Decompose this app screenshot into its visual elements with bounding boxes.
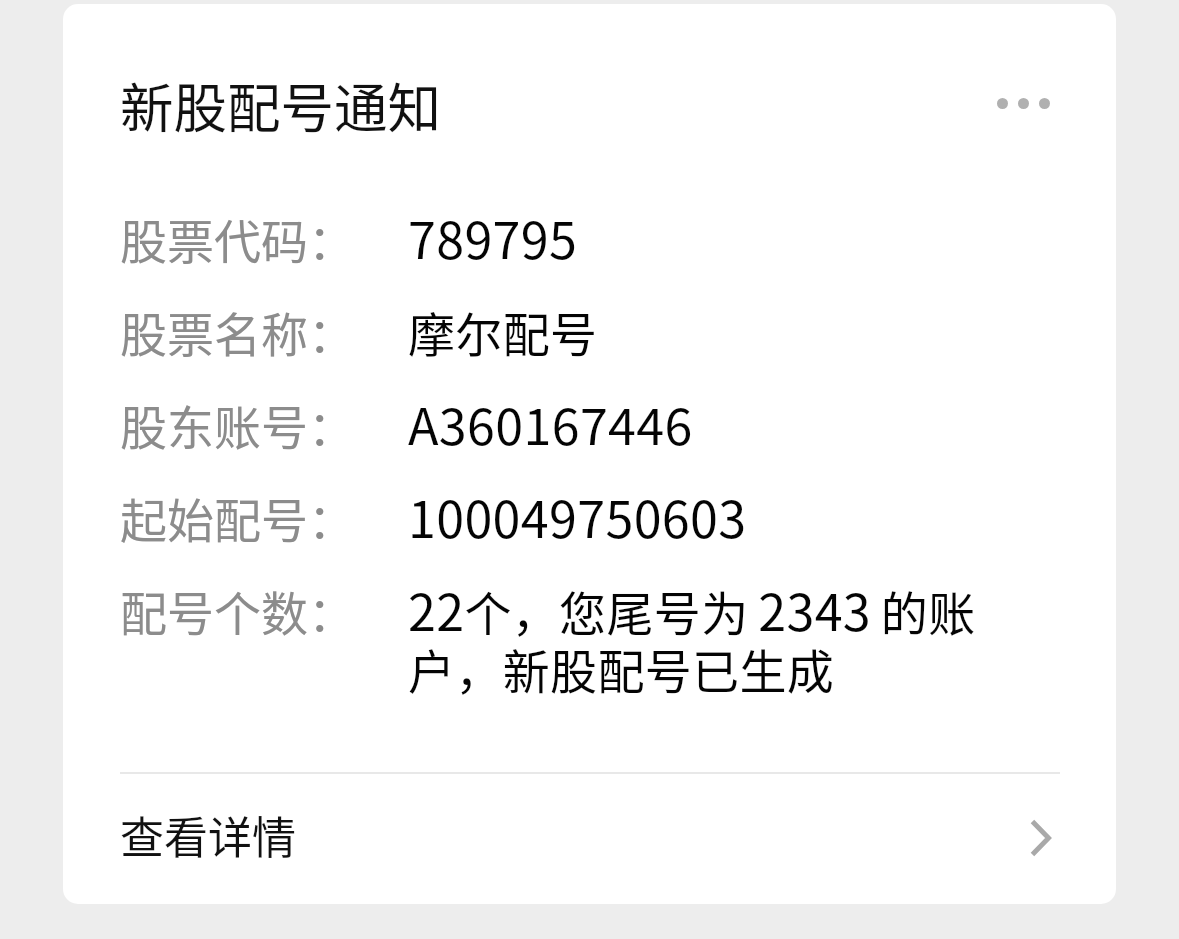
staticText: 股票代码： bbox=[120, 213, 408, 271]
staticText: 22个，您尾号为 2343 的账户，新股配号已生成 bbox=[408, 585, 993, 701]
staticText: 摩尔配号 bbox=[408, 306, 993, 364]
staticText: 查看详情 bbox=[120, 803, 296, 867]
staticText: 配号个数： bbox=[120, 585, 408, 643]
button[interactable]: More options bbox=[984, 68, 1062, 138]
staticText: 789795 bbox=[408, 213, 993, 271]
staticText: 起始配号： bbox=[120, 492, 408, 550]
staticText: A360167446 bbox=[408, 399, 993, 457]
staticText: 100049750603 bbox=[408, 492, 993, 550]
staticText: 股东账号： bbox=[120, 399, 408, 457]
staticText: 股票名称： bbox=[120, 306, 408, 364]
button[interactable]: 查看详情 bbox=[63, 774, 1116, 904]
staticText: 新股配号通知 bbox=[120, 66, 441, 143]
